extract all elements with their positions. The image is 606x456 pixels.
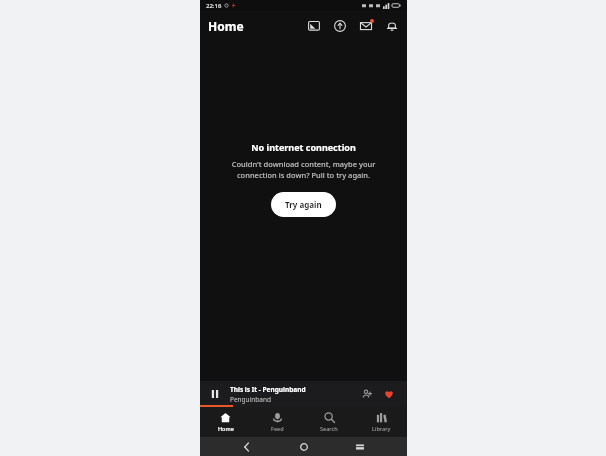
button[interactable]: Recents: [350, 437, 370, 456]
button[interactable]: Home: [200, 407, 251, 437]
staticText: Search: [320, 425, 338, 432]
button[interactable]: Add to playlist: [359, 386, 375, 402]
button[interactable]: Library: [355, 407, 407, 437]
button[interactable]: Inbox: [357, 17, 375, 35]
staticText: Library: [372, 425, 391, 432]
button[interactable]: Downloads: [331, 17, 349, 35]
staticText: Home: [218, 425, 234, 432]
button[interactable]: Unlike: [381, 386, 397, 402]
button[interactable]: Back: [237, 437, 257, 456]
button[interactable]: Notifications: [383, 17, 401, 35]
staticText: Try again: [285, 199, 322, 210]
staticText: No internet connection: [251, 141, 356, 153]
button[interactable]: Feed: [251, 407, 303, 437]
button[interactable]: Try again: [271, 192, 336, 217]
staticText: This is It - Penguinband: [230, 385, 306, 394]
button[interactable]: Cast: [305, 17, 323, 35]
button[interactable]: Pause: [208, 387, 222, 401]
staticText: Feed: [271, 425, 284, 432]
button[interactable]: Search: [303, 407, 355, 437]
staticText: Couldn't download content, maybe your co…: [214, 159, 393, 180]
staticText: Home: [208, 18, 244, 34]
button[interactable]: Home: [294, 437, 314, 456]
button[interactable]: Pause: [200, 381, 407, 407]
staticText: Penguinband: [230, 395, 271, 404]
staticText: 22:16: [206, 2, 222, 10]
